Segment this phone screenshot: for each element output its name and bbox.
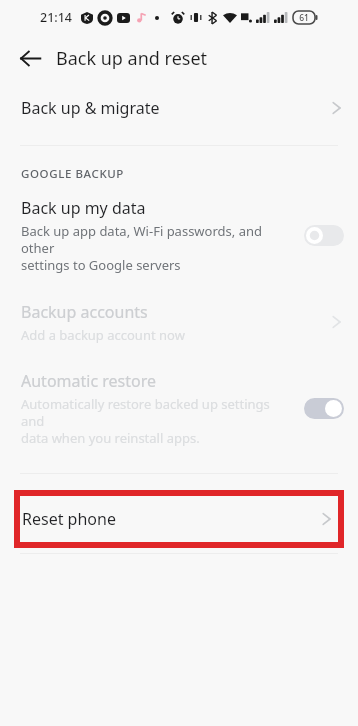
staticText: Automatic restore [21, 370, 156, 392]
staticText: Automatically restore backed up settings… [21, 395, 296, 447]
button[interactable]: Back up my data [0, 193, 358, 278]
staticText: Add a backup account now [21, 326, 185, 344]
button[interactable]: Reset phone [14, 490, 344, 548]
staticText: Back up & migrate [21, 97, 160, 119]
button[interactable]: Automatic restore [0, 366, 358, 451]
staticText: Back up app data, Wi-Fi passwords, and o… [21, 222, 296, 274]
staticText: Back up and reset [56, 46, 208, 71]
staticText: Reset phone [22, 508, 322, 530]
staticText: GOOGLE BACKUP [21, 166, 124, 182]
button[interactable]: Toggle on [304, 398, 344, 419]
staticText: Back up my data [21, 197, 146, 219]
staticText: 21:14 [40, 9, 73, 26]
button[interactable]: Toggle off [304, 225, 344, 246]
button[interactable]: Back up & migrate [0, 82, 358, 134]
button[interactable]: Backup accounts [0, 294, 358, 350]
staticText: 61 [299, 12, 309, 24]
button[interactable]: Back [10, 38, 50, 78]
staticText: Backup accounts [21, 301, 148, 323]
